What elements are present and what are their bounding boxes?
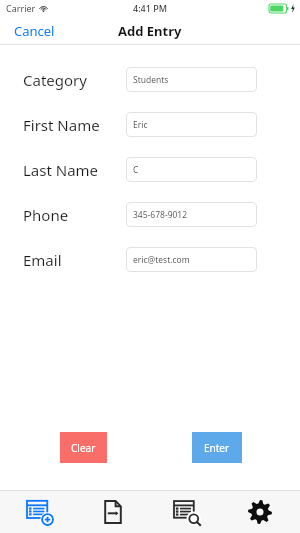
staticText: Last Name — [23, 160, 99, 180]
button[interactable]: Add entry — [7, 491, 73, 533]
staticText: Carrier — [6, 2, 36, 14]
button[interactable]: Export — [80, 491, 146, 533]
button[interactable]: 345-678-9012 — [126, 202, 257, 227]
staticText: Clear — [71, 441, 96, 455]
button[interactable]: Eric — [126, 112, 257, 137]
button[interactable]: Cancel — [0, 18, 69, 44]
button[interactable]: Search entries — [154, 491, 220, 533]
button[interactable]: Clear — [60, 432, 107, 463]
staticText: eric@test.com — [133, 254, 190, 266]
staticText: 4:41 PM — [133, 2, 167, 14]
staticText: 345-678-9012 — [133, 209, 188, 221]
button[interactable]: Students — [126, 67, 257, 92]
staticText: Eric — [133, 119, 148, 131]
staticText: First Name — [23, 115, 100, 135]
staticText: Phone — [23, 205, 69, 225]
staticText: C — [133, 164, 139, 176]
staticText: Add Entry — [118, 22, 182, 40]
button[interactable]: C — [126, 157, 257, 182]
staticText: Students — [133, 74, 169, 86]
staticText: Cancel — [14, 22, 55, 40]
staticText: Email — [23, 250, 62, 270]
staticText: Enter — [204, 441, 230, 455]
button[interactable]: Settings — [227, 491, 293, 533]
button[interactable]: eric@test.com — [126, 247, 257, 272]
staticText: Category — [23, 70, 87, 90]
button[interactable]: Enter — [192, 432, 242, 463]
